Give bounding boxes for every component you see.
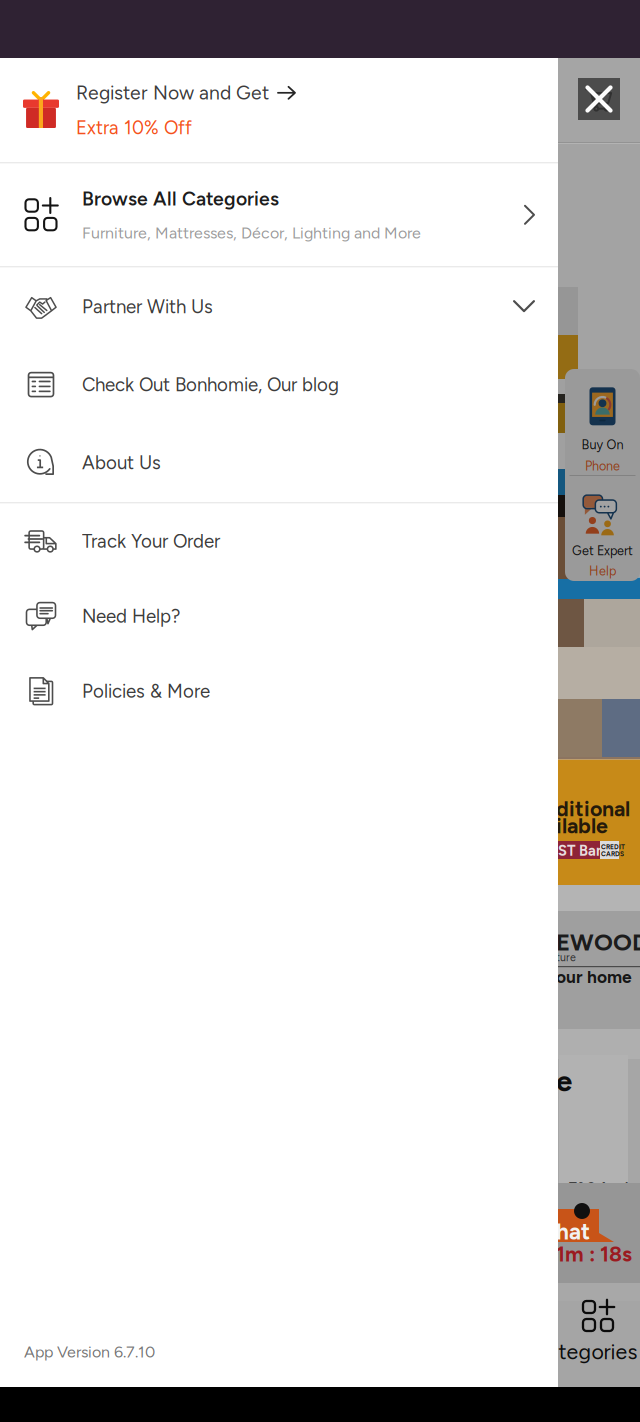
staticText: ditional (556, 796, 630, 822)
staticText: e, T&C Apply (556, 1179, 636, 1195)
staticText: Get Expert (572, 543, 633, 558)
button[interactable]: About Us (0, 424, 558, 502)
staticText: tegories (558, 1339, 637, 1365)
staticText: Partner With Us (82, 295, 213, 318)
button[interactable]: Register Now and Get (0, 58, 558, 162)
staticText: hat (556, 1218, 590, 1245)
button[interactable]: Track Your Order (0, 504, 558, 579)
button[interactable]: Get Expert (565, 476, 640, 581)
staticText: Register Now and Get (76, 81, 269, 104)
staticText: Furniture, Mattresses, Décor, Lighting a… (82, 223, 421, 242)
button[interactable]: Buy On (565, 369, 640, 475)
staticText: ilable (556, 813, 608, 839)
staticText: Phone (585, 458, 620, 474)
staticText: Browse All Categories (82, 187, 279, 210)
staticText: ture (556, 951, 576, 964)
staticText: our home (556, 967, 632, 987)
button[interactable]: Check Out Bonhomie, Our blog (0, 346, 558, 424)
button[interactable]: Policies & More (0, 654, 558, 729)
staticText: CREDIT (601, 843, 625, 851)
staticText: CARDS (601, 850, 624, 858)
button[interactable]: Browse All Categories (0, 164, 558, 266)
staticText: Extra 10% Off (76, 116, 192, 139)
staticText: EWOOD (556, 928, 640, 956)
staticText: ST Bank (558, 842, 612, 859)
button[interactable]: Need Help? (0, 579, 558, 654)
staticText: About Us (82, 452, 161, 474)
staticText: App Version 6.7.10 (24, 1342, 155, 1362)
staticText: Track Your Order (82, 530, 220, 552)
staticText: Policies & More (82, 680, 210, 702)
staticText: Buy On (581, 437, 623, 452)
button[interactable]: Close (578, 78, 620, 120)
button[interactable]: Partner With Us (0, 268, 558, 346)
staticText: Need Help? (82, 605, 180, 627)
staticText: Check Out Bonhomie, Our blog (82, 373, 339, 396)
staticText: 1m : 18s (556, 1241, 632, 1267)
staticText: e (556, 1063, 572, 1099)
staticText: Help (589, 563, 616, 579)
